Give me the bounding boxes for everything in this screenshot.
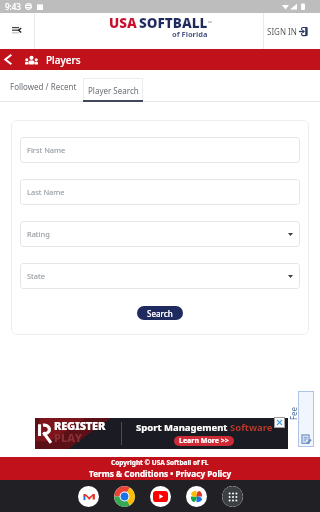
button[interactable]: Gmail <box>78 486 99 507</box>
staticText: Players <box>46 53 81 67</box>
staticText: Sport Management <box>136 421 230 434</box>
button[interactable]: Menu <box>0 13 34 49</box>
staticText: Rating <box>27 229 50 239</box>
staticText: USA <box>109 14 137 32</box>
staticText: First Name <box>27 145 66 155</box>
staticText: Player Search <box>88 85 139 96</box>
staticText: Last Name <box>27 187 65 197</box>
button[interactable]: Feedback <box>298 391 314 447</box>
staticText: Feedback <box>287 405 298 421</box>
staticText: Software <box>230 421 273 434</box>
button[interactable]: Rating <box>20 221 300 247</box>
button[interactable]: Close ad <box>274 417 285 428</box>
staticText: 9:43 <box>5 1 21 12</box>
button[interactable]: SIGN IN <box>267 26 309 37</box>
staticText: SOFTBALL <box>139 14 208 32</box>
staticText: PLAY <box>54 430 82 445</box>
button[interactable]: First Name <box>20 137 300 163</box>
button[interactable]: Back <box>0 49 16 70</box>
staticText: REGISTER <box>54 418 106 433</box>
button[interactable]: YouTube <box>150 486 171 507</box>
button[interactable]: Followed / Recent <box>10 70 77 102</box>
staticText: Followed / Recent <box>10 81 77 92</box>
button[interactable]: Terms & Conditions • Privacy Policy <box>89 468 232 479</box>
staticText: Copyright © USA Softball of FL <box>111 458 209 467</box>
staticText: SIGN IN <box>267 26 297 37</box>
button[interactable]: Advertisement <box>35 418 288 449</box>
staticText: of Florida <box>172 29 208 39</box>
button[interactable]: Player Search <box>83 70 143 102</box>
staticText: State <box>27 271 45 281</box>
button[interactable]: Chrome <box>114 486 135 507</box>
button[interactable]: Search <box>137 306 183 320</box>
staticText: Learn More >> <box>179 436 229 446</box>
button[interactable]: Learn More >> <box>174 436 234 446</box>
button[interactable]: Photos <box>186 486 207 507</box>
staticText: Search <box>147 308 173 319</box>
staticText: ™ <box>208 20 211 27</box>
button[interactable]: Last Name <box>20 179 300 205</box>
button[interactable]: State <box>20 263 300 289</box>
button[interactable]: All apps <box>222 486 243 507</box>
